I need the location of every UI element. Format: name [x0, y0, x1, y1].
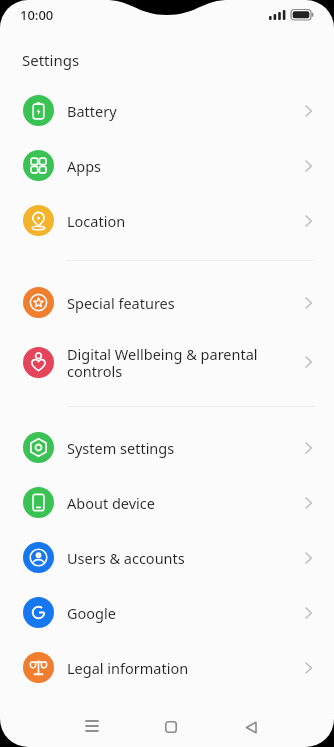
- staticText: Location: [67, 211, 126, 231]
- staticText: Battery: [67, 101, 117, 121]
- staticText: Special features: [67, 293, 175, 313]
- staticText: Users & accounts: [67, 548, 185, 568]
- button[interactable]: Google: [0, 585, 334, 640]
- staticText: 10:00: [20, 6, 54, 24]
- button[interactable]: [151, 707, 191, 747]
- button[interactable]: System settings: [0, 420, 334, 475]
- button[interactable]: Battery: [0, 83, 334, 138]
- staticText: About device: [67, 493, 155, 513]
- staticText: Legal information: [67, 658, 189, 678]
- button[interactable]: Location: [0, 193, 334, 248]
- button[interactable]: Special features: [0, 275, 334, 330]
- button[interactable]: Users & accounts: [0, 530, 334, 585]
- staticText: Settings: [22, 50, 80, 70]
- button[interactable]: [72, 706, 112, 746]
- button[interactable]: About device: [0, 475, 334, 530]
- button[interactable]: Digital Wellbeing & parental controls: [0, 330, 334, 394]
- staticText: System settings: [67, 438, 175, 458]
- button[interactable]: Apps: [0, 138, 334, 193]
- staticText: Digital Wellbeing & parental controls: [67, 344, 258, 381]
- staticText: Apps: [67, 156, 102, 176]
- button[interactable]: Legal information: [0, 640, 334, 695]
- button[interactable]: [231, 707, 271, 747]
- staticText: Google: [67, 603, 116, 623]
